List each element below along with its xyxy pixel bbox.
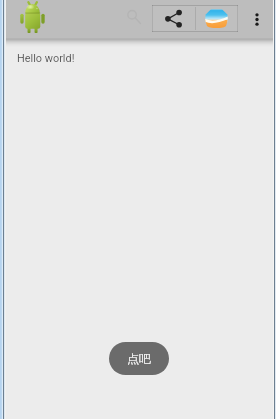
button[interactable]: App icon, up bbox=[20, 2, 46, 33]
staticText: 点吧 bbox=[127, 351, 151, 366]
staticText: Hello world! bbox=[17, 52, 75, 65]
button[interactable]: 点吧 bbox=[109, 342, 169, 375]
button[interactable]: More options bbox=[244, 7, 269, 31]
button[interactable]: Share bbox=[152, 5, 195, 32]
button[interactable]: Open in app bbox=[195, 5, 238, 32]
